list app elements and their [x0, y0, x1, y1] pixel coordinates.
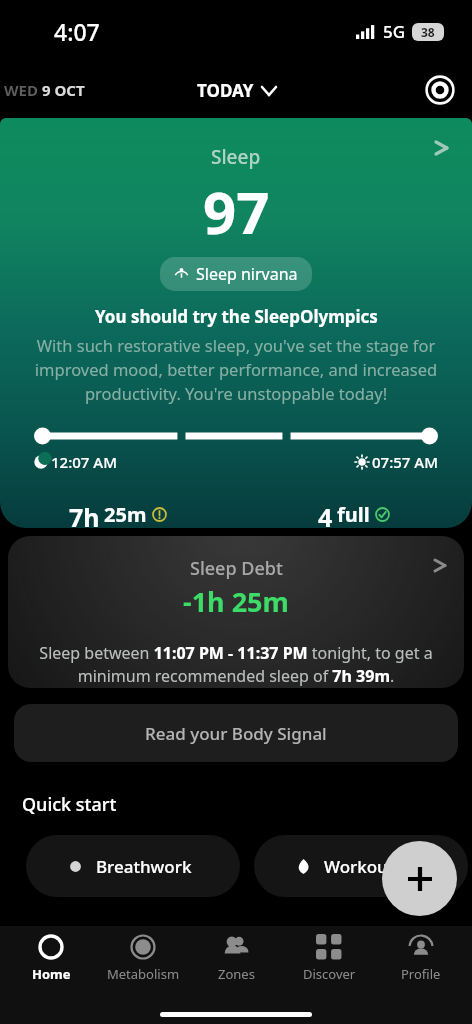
staticText: 25m — [104, 501, 147, 528]
staticText: -1h 25m — [183, 583, 289, 620]
staticText: Metabolism — [107, 965, 180, 983]
staticText: Workout — [324, 855, 395, 878]
staticText: Sleep between 11:07 PM - 11:37 PM tonigh… — [30, 642, 442, 687]
staticText: Sleep Debt — [190, 556, 283, 581]
button[interactable]: Read your Body Signal — [14, 704, 458, 762]
button[interactable]: Home — [9, 934, 93, 983]
staticText: Sleep — [211, 144, 261, 170]
staticText: Sleep nirvana — [196, 263, 298, 285]
button[interactable]: Add — [382, 841, 457, 916]
staticText: 9 OCT — [42, 80, 85, 100]
staticText: 97 — [203, 172, 270, 251]
button[interactable]: Zones — [194, 934, 278, 983]
staticText: Read your Body Signal — [145, 722, 327, 745]
staticText: 12:07 AM — [51, 452, 117, 472]
staticText: Discover — [303, 965, 356, 983]
button[interactable]: Profile — [379, 934, 463, 983]
button[interactable]: Metabolism — [101, 934, 185, 983]
button[interactable]: TODAY — [197, 79, 276, 102]
staticText: Quick start — [22, 792, 117, 817]
button[interactable]: Rings — [418, 68, 462, 112]
staticText: TODAY — [197, 79, 254, 102]
staticText: You should try the SleepOlympics — [95, 305, 378, 328]
staticText: Profile — [401, 965, 441, 983]
staticText: With such restorative sleep, you've set … — [20, 334, 452, 405]
staticText: 4:07 — [54, 16, 100, 47]
button[interactable]: Workout — [254, 835, 468, 897]
staticText: 07:57 AM — [372, 452, 438, 472]
staticText: 5G — [383, 20, 406, 43]
staticText: 4 — [318, 500, 333, 528]
staticText: Zones — [218, 965, 255, 983]
button[interactable]: Breathwork — [26, 835, 240, 897]
staticText: 38 — [421, 24, 435, 40]
staticText: full — [337, 501, 370, 528]
staticText: 7h — [69, 500, 100, 528]
staticText: Home — [32, 965, 71, 983]
button[interactable]: Sleep — [0, 118, 472, 528]
staticText: WED — [4, 80, 42, 100]
staticText: Breathwork — [96, 855, 192, 878]
button[interactable]: Discover — [287, 934, 371, 983]
button[interactable]: Sleep Debt — [8, 536, 464, 688]
